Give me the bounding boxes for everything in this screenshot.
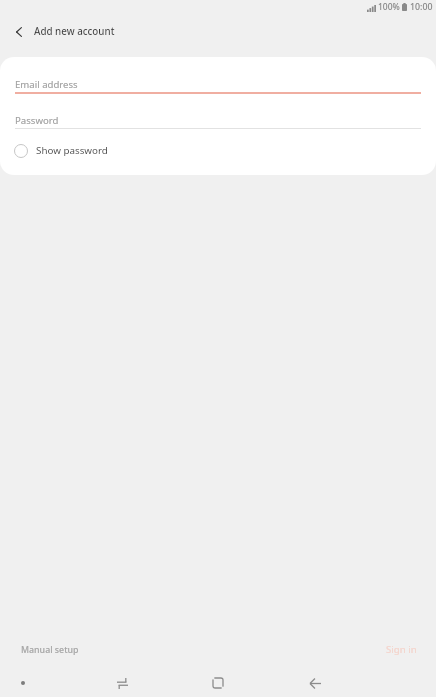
staticText: Add new account bbox=[34, 25, 115, 38]
staticText: 10:00 bbox=[410, 1, 433, 13]
button[interactable]: Back bbox=[301, 669, 329, 697]
button[interactable]: Sign in bbox=[380, 637, 423, 662]
button[interactable]: Recent apps bbox=[108, 669, 136, 697]
staticText: Manual setup bbox=[21, 644, 79, 656]
staticText: Show password bbox=[36, 144, 108, 157]
staticText: Password bbox=[15, 114, 59, 127]
staticText: 100% bbox=[378, 1, 400, 13]
button[interactable]: Navigate up bbox=[6, 19, 32, 45]
button[interactable]: Show password bbox=[0, 137, 436, 163]
staticText: Sign in bbox=[386, 643, 417, 656]
button[interactable]: Notification bbox=[10, 670, 36, 696]
staticText: Email address bbox=[15, 78, 78, 91]
button[interactable]: Home bbox=[204, 669, 232, 697]
button[interactable]: Manual setup bbox=[15, 638, 85, 662]
